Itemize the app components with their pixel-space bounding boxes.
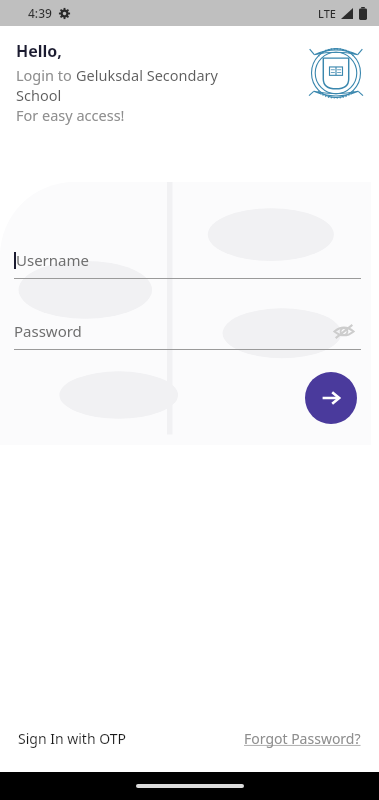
- button[interactable]: Sign in: [305, 372, 357, 424]
- staticText: Hello,: [16, 40, 62, 62]
- staticText: Username: [16, 250, 89, 270]
- button[interactable]: Forgot Password?: [244, 725, 361, 752]
- staticText: Geluksdal Secondary: [76, 65, 218, 85]
- staticText: LTE: [318, 6, 336, 21]
- button[interactable]: Username: [14, 242, 361, 278]
- staticText: Forgot Password?: [244, 729, 361, 748]
- button[interactable]: Password: [14, 313, 361, 349]
- staticText: Sign In with OTP: [18, 729, 126, 748]
- button[interactable]: Sign In with OTP: [18, 725, 126, 752]
- staticText: For easy access!: [16, 105, 125, 125]
- staticText: Password: [14, 321, 82, 341]
- staticText: School: [16, 85, 62, 105]
- staticText: 4:39: [28, 5, 52, 21]
- button[interactable]: Show password: [327, 314, 361, 348]
- staticText: Login to: [16, 65, 76, 85]
